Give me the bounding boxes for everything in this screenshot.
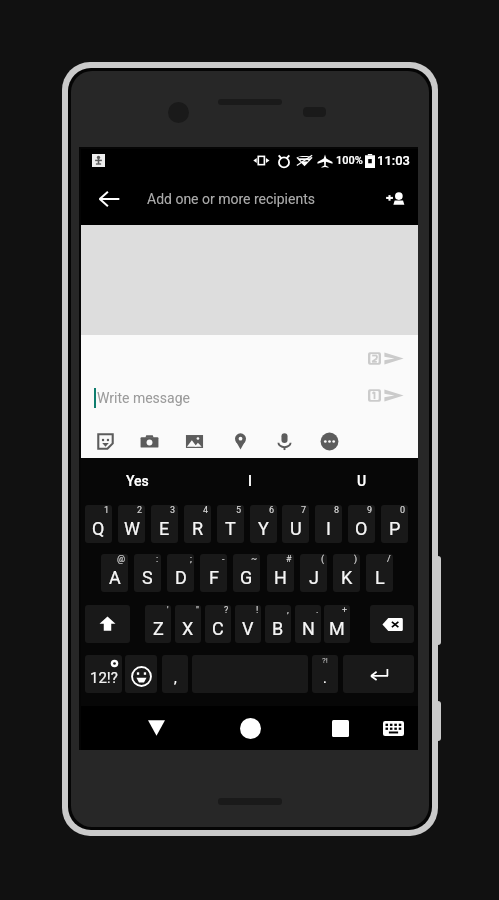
staticText: + xyxy=(342,605,348,616)
button[interactable]: Backspace xyxy=(370,605,414,643)
staticText: 9 xyxy=(367,505,373,516)
button[interactable]: Period xyxy=(312,655,338,693)
button[interactable]: , xyxy=(265,605,291,643)
button[interactable]: 6 xyxy=(250,505,277,543)
staticText: ~ xyxy=(251,554,258,565)
staticText: 3 xyxy=(170,505,176,516)
staticText: M xyxy=(329,618,345,639)
button[interactable]: I xyxy=(194,458,306,501)
button[interactable]: Send with SIM 2 xyxy=(368,351,404,366)
button[interactable]: Camera xyxy=(136,428,162,454)
button[interactable]: Voice message xyxy=(271,428,297,454)
button[interactable]: ) xyxy=(333,554,360,592)
button[interactable]: Gallery xyxy=(181,428,207,454)
staticText: W xyxy=(124,518,140,539)
button[interactable]: ? xyxy=(205,605,231,643)
button[interactable]: Enter xyxy=(343,655,414,693)
staticText: / xyxy=(387,554,391,565)
staticText: 0 xyxy=(400,505,406,516)
button[interactable]: U xyxy=(306,458,418,501)
button[interactable]: Location xyxy=(227,428,253,454)
staticText: X xyxy=(182,618,194,639)
staticText: ' xyxy=(167,605,169,616)
button[interactable]: + xyxy=(324,605,350,643)
staticText: K xyxy=(341,567,353,588)
button[interactable]: . xyxy=(295,605,321,643)
staticText: 6 xyxy=(269,505,275,516)
button[interactable]: ~ xyxy=(233,554,260,592)
staticText: C xyxy=(212,618,224,639)
staticText: " xyxy=(196,605,199,616)
staticText: S xyxy=(142,567,153,588)
button[interactable]: 0 xyxy=(381,505,408,543)
button[interactable]: " xyxy=(175,605,201,643)
staticText: Yes xyxy=(126,473,149,489)
staticText: Z xyxy=(153,618,164,639)
button[interactable]: 9 xyxy=(348,505,375,543)
staticText: : xyxy=(156,554,159,565)
staticText: ?! xyxy=(322,656,328,665)
staticText: N xyxy=(302,618,315,639)
button[interactable]: Comma xyxy=(162,655,188,693)
staticText: 4 xyxy=(203,505,209,516)
button[interactable]: 7 xyxy=(282,505,309,543)
button[interactable]: Yes xyxy=(81,458,194,501)
staticText: V xyxy=(242,618,254,639)
button[interactable]: 3 xyxy=(151,505,178,543)
staticText: T xyxy=(225,518,236,539)
button[interactable]: Back xyxy=(91,181,127,217)
staticText: Write message xyxy=(97,390,190,406)
button[interactable]: Sticker xyxy=(92,428,118,454)
staticText: J xyxy=(309,567,319,588)
staticText: ( xyxy=(321,554,325,565)
staticText: 12!? xyxy=(90,669,118,687)
staticText: Y xyxy=(258,518,269,539)
staticText: F xyxy=(209,567,219,588)
staticText: 8 xyxy=(334,505,340,516)
staticText: O xyxy=(355,518,368,539)
button[interactable]: : xyxy=(134,554,161,592)
button[interactable]: Switch keyboard xyxy=(377,712,409,744)
button[interactable]: Hide keyboard xyxy=(140,712,172,744)
staticText: U xyxy=(357,473,367,489)
staticText: G xyxy=(240,567,253,588)
button[interactable]: Symbols xyxy=(85,655,122,693)
staticText: . xyxy=(323,670,327,686)
button[interactable]: ; xyxy=(167,554,194,592)
button[interactable]: / xyxy=(366,554,393,592)
button[interactable]: # xyxy=(267,554,294,592)
button[interactable]: Shift xyxy=(85,605,130,643)
staticText: 100% xyxy=(336,154,363,167)
button[interactable]: 2 xyxy=(118,505,145,543)
staticText: 1 xyxy=(104,505,110,516)
staticText: @ xyxy=(117,554,126,565)
button[interactable]: 1 xyxy=(85,505,112,543)
button[interactable]: Send with SIM 1 xyxy=(368,388,404,403)
staticText: ; xyxy=(190,554,192,565)
button[interactable]: - xyxy=(200,554,227,592)
staticText: R xyxy=(192,518,204,539)
button[interactable]: 8 xyxy=(315,505,342,543)
button[interactable]: ' xyxy=(145,605,171,643)
button[interactable]: 5 xyxy=(217,505,244,543)
staticText: D xyxy=(175,567,187,588)
staticText: L xyxy=(375,567,385,588)
staticText: ) xyxy=(354,554,358,565)
staticText: E xyxy=(159,518,170,539)
button[interactable]: Add recipient xyxy=(378,181,414,217)
staticText: P xyxy=(389,518,401,539)
button[interactable]: ! xyxy=(235,605,261,643)
staticText: U xyxy=(290,518,302,539)
staticText: B xyxy=(272,618,284,639)
button[interactable]: Home xyxy=(234,712,266,744)
staticText: ? xyxy=(224,605,229,616)
button[interactable]: @ xyxy=(101,554,128,592)
staticText: 5 xyxy=(236,505,242,516)
button[interactable]: Recent apps xyxy=(324,712,356,744)
button[interactable]: 4 xyxy=(184,505,211,543)
staticText: . xyxy=(316,605,319,616)
button[interactable]: ( xyxy=(300,554,327,592)
button[interactable]: More options xyxy=(316,428,342,454)
button[interactable]: Emoji xyxy=(125,655,157,693)
